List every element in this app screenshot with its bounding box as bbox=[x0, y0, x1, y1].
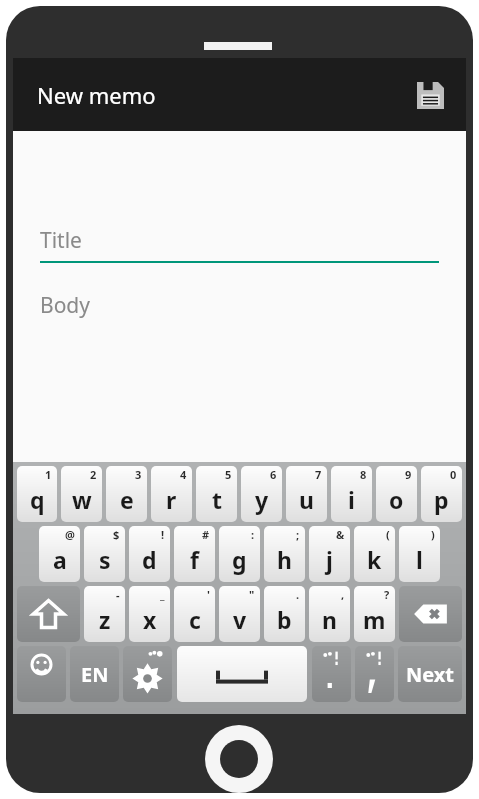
staticText: f bbox=[190, 544, 199, 575]
staticText: 9 bbox=[405, 467, 412, 482]
staticText: : bbox=[251, 527, 255, 542]
button[interactable]: Next bbox=[398, 646, 462, 702]
button[interactable]: , bbox=[309, 586, 350, 642]
button[interactable]: EN bbox=[70, 646, 119, 702]
button[interactable]: 8 bbox=[331, 466, 372, 522]
button[interactable]: & bbox=[309, 526, 350, 582]
button[interactable]: Comma bbox=[355, 646, 394, 702]
button[interactable]: Space bbox=[177, 646, 307, 702]
staticText: w bbox=[72, 484, 92, 515]
button[interactable]: 4 bbox=[151, 466, 192, 522]
staticText: Next bbox=[406, 661, 455, 688]
button[interactable]: $ bbox=[84, 526, 125, 582]
staticText: h bbox=[277, 544, 292, 575]
button[interactable]: 2 bbox=[61, 466, 102, 522]
staticText: k bbox=[367, 544, 382, 575]
staticText: EN bbox=[81, 661, 109, 688]
staticText: Title bbox=[40, 226, 82, 255]
button[interactable]: . bbox=[264, 586, 305, 642]
staticText: l bbox=[416, 544, 423, 575]
staticText: ' bbox=[207, 587, 210, 602]
button[interactable]: : bbox=[219, 526, 260, 582]
staticText: s bbox=[99, 544, 111, 575]
staticText: r bbox=[166, 484, 177, 515]
staticText: # bbox=[202, 527, 210, 542]
staticText: z bbox=[99, 604, 111, 635]
staticText: n bbox=[322, 604, 337, 635]
button[interactable]: - bbox=[84, 586, 125, 642]
staticText: a bbox=[53, 544, 67, 575]
staticText: _ bbox=[160, 587, 165, 602]
staticText: u bbox=[299, 484, 314, 515]
staticText: 3 bbox=[135, 467, 142, 482]
button[interactable]: 5 bbox=[196, 466, 237, 522]
button[interactable]: 3 bbox=[106, 466, 147, 522]
staticText: 2 bbox=[90, 467, 97, 482]
staticText: b bbox=[277, 604, 292, 635]
staticText: 7 bbox=[315, 467, 322, 482]
staticText: 5 bbox=[225, 467, 232, 482]
staticText: x bbox=[143, 604, 157, 635]
staticText: q bbox=[30, 484, 45, 515]
staticText: ) bbox=[431, 527, 435, 542]
staticText: j bbox=[326, 544, 333, 575]
staticText: New memo bbox=[37, 80, 156, 110]
button[interactable]: 0 bbox=[421, 466, 462, 522]
staticText: & bbox=[336, 527, 345, 542]
staticText: Body bbox=[40, 291, 90, 320]
staticText: m bbox=[363, 604, 386, 635]
button[interactable]: Save bbox=[408, 73, 452, 117]
staticText: c bbox=[189, 604, 201, 635]
button[interactable]: Symbols bbox=[17, 646, 66, 702]
staticText: t bbox=[212, 484, 222, 515]
staticText: ; bbox=[296, 527, 300, 542]
button[interactable]: # bbox=[174, 526, 215, 582]
staticText: 8 bbox=[360, 467, 367, 482]
staticText: ( bbox=[386, 527, 390, 542]
button[interactable]: 6 bbox=[241, 466, 282, 522]
button[interactable]: Shift bbox=[17, 586, 80, 642]
staticText: v bbox=[233, 604, 247, 635]
staticText: 4 bbox=[180, 467, 187, 482]
button[interactable]: " bbox=[219, 586, 260, 642]
staticText: $ bbox=[113, 527, 120, 542]
staticText: g bbox=[232, 544, 247, 575]
button[interactable]: ? bbox=[354, 586, 395, 642]
staticText: , bbox=[341, 587, 345, 602]
button[interactable]: 9 bbox=[376, 466, 417, 522]
button[interactable]: 1 bbox=[17, 466, 57, 522]
button[interactable]: _ bbox=[129, 586, 170, 642]
staticText: 6 bbox=[270, 467, 277, 482]
button[interactable]: Period bbox=[312, 646, 351, 702]
button[interactable]: Settings bbox=[123, 646, 172, 702]
staticText: 1 bbox=[45, 467, 52, 482]
button[interactable]: @ bbox=[39, 526, 80, 582]
staticText: i bbox=[348, 484, 355, 515]
staticText: 0 bbox=[450, 467, 457, 482]
button[interactable]: ; bbox=[264, 526, 305, 582]
staticText: . bbox=[296, 587, 300, 602]
button[interactable]: 7 bbox=[286, 466, 327, 522]
button[interactable]: ) bbox=[399, 526, 440, 582]
staticText: @ bbox=[65, 527, 75, 542]
button[interactable]: ' bbox=[174, 586, 215, 642]
staticText: - bbox=[116, 587, 120, 602]
staticText: d bbox=[142, 544, 157, 575]
staticText: y bbox=[255, 484, 269, 515]
staticText: ! bbox=[161, 527, 165, 542]
staticText: o bbox=[389, 484, 404, 515]
button[interactable]: ! bbox=[129, 526, 170, 582]
staticText: e bbox=[120, 484, 134, 515]
staticText: " bbox=[249, 587, 255, 602]
staticText: ? bbox=[384, 587, 390, 602]
staticText: p bbox=[434, 484, 449, 515]
button[interactable]: ( bbox=[354, 526, 395, 582]
button[interactable]: Backspace bbox=[399, 586, 462, 642]
